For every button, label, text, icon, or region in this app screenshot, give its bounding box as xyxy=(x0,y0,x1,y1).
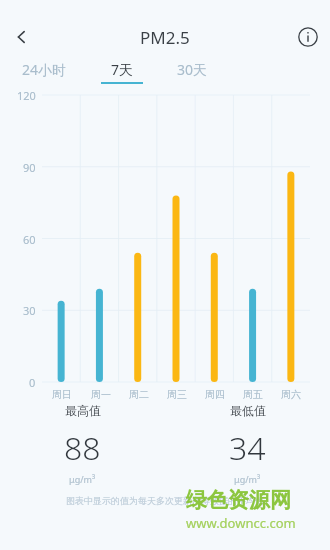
staticText: 周六 xyxy=(281,388,301,401)
staticText: 30 xyxy=(23,303,36,318)
button[interactable]: 7天 xyxy=(101,60,143,84)
staticText: 120 xyxy=(17,88,36,103)
button[interactable]: Info xyxy=(286,18,330,56)
staticText: 周日 xyxy=(52,388,72,401)
staticText: μg/m³ xyxy=(69,473,96,485)
staticText: 周二 xyxy=(129,388,149,401)
staticText: 7天 xyxy=(111,60,134,79)
staticText: 88 xyxy=(64,426,101,470)
button[interactable]: Back xyxy=(0,18,44,56)
staticText: 60 xyxy=(23,232,36,247)
staticText: 周四 xyxy=(205,388,225,401)
staticText: 24小时 xyxy=(22,60,67,79)
staticText: 图表中显示的值为每天多次更新所得数据的平均值 xyxy=(66,495,264,506)
staticText: 最低值 xyxy=(230,403,266,418)
button[interactable]: 24小时 xyxy=(16,60,73,84)
staticText: 周三 xyxy=(167,388,187,401)
staticText: μg/m³ xyxy=(234,473,261,485)
staticText: 30天 xyxy=(177,60,208,79)
staticText: 最高值 xyxy=(65,403,101,418)
button[interactable]: 30天 xyxy=(171,60,214,84)
staticText: 周一 xyxy=(91,388,111,401)
staticText: PM2.5 xyxy=(140,26,190,49)
staticText: 34 xyxy=(229,426,266,470)
staticText: 90 xyxy=(23,160,36,175)
staticText: www.downcc.com xyxy=(186,514,296,532)
staticText: 绿色资源网 xyxy=(186,487,291,513)
staticText: 0 xyxy=(29,375,36,390)
staticText: 周五 xyxy=(243,388,263,401)
